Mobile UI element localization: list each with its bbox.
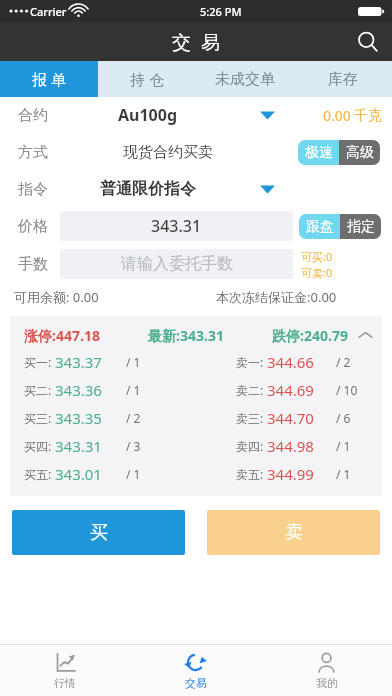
staticText: 现货合约买卖 [123,143,213,162]
staticText: Carrier [30,4,67,19]
staticText: 买五: [24,466,52,482]
button[interactable]: Search [344,22,392,61]
staticText: 可卖:0 [301,265,333,280]
staticText: 买二: [24,382,52,398]
staticText: 手数 [18,255,48,274]
staticText: / 1 [126,466,141,482]
staticText: 本次冻结保证金:0.00 [216,288,337,306]
staticText: 343.35 [55,408,102,428]
staticText: / 6 [336,410,351,426]
staticText: 343.31 [151,215,202,237]
button[interactable]: 343.31 [60,211,293,241]
button[interactable]: 库存 [294,61,392,97]
staticText: 卖二: [236,382,264,398]
staticText: 交 易 [172,29,220,55]
staticText: 343.31 [55,436,102,456]
button[interactable]: 持 仓 [98,61,196,97]
button[interactable]: 买一: [10,348,382,376]
staticText: 最新:343.31 [148,326,224,345]
staticText: 普通限价指令 [100,179,196,199]
staticText: 库存 [328,70,358,89]
button[interactable]: 买五: [10,460,382,488]
staticText: 买三: [24,410,52,426]
staticText: 持 仓 [130,69,164,89]
staticText: 343.37 [55,352,102,372]
staticText: 千克 [354,107,382,125]
staticText: / 2 [126,410,141,426]
button[interactable]: 指令 [0,171,392,207]
button[interactable]: 交易 [130,645,261,696]
staticText: 价格 [18,217,48,236]
staticText: 343.01 [55,464,102,484]
staticText: 344.66 [267,352,314,372]
button[interactable]: 买二: [10,376,382,404]
staticText: 方式 [18,143,48,162]
button[interactable]: 卖 [207,510,380,555]
staticText: 可买:0 [301,249,333,264]
staticText: 跟盘 [306,218,334,236]
staticText: 344.99 [267,464,314,484]
staticText: 买一: [24,354,52,370]
button[interactable]: 极速 [298,140,339,165]
staticText: Au100g [118,104,178,126]
staticText: 卖 [285,521,303,544]
staticText: / 1 [336,466,351,482]
staticText: 5:26 PM [200,4,242,19]
staticText: 我的 [316,676,338,690]
staticText: 合约 [18,106,48,125]
staticText: 未成交单 [215,70,275,89]
button[interactable]: 我的 [261,645,392,696]
staticText: / 10 [336,382,358,398]
staticText: 0.00 [323,106,351,125]
staticText: 交易 [185,676,207,690]
staticText: 买 [90,521,108,544]
staticText: 344.69 [267,380,314,400]
button[interactable]: 跟盘 [299,214,340,239]
button[interactable]: 买三: [10,404,382,432]
button[interactable]: 报 单 [0,61,98,97]
staticText: 请输入委托手数 [121,254,233,274]
staticText: 卖一: [236,354,264,370]
staticText: 极速 [305,144,333,162]
button[interactable]: 买 [12,510,185,555]
staticText: / 3 [126,438,141,454]
staticText: / 2 [336,354,351,370]
button[interactable]: 未成交单 [196,61,294,97]
staticText: 高级 [346,144,374,162]
staticText: 报 单 [32,69,66,89]
staticText: 买四: [24,438,52,454]
button[interactable]: 合约 [0,97,392,133]
button[interactable]: 买四: [10,432,382,460]
staticText: 344.70 [267,408,314,428]
staticText: 卖四: [236,438,264,454]
staticText: / 1 [336,438,351,454]
staticText: 指定 [347,218,375,236]
staticText: 344.98 [267,436,314,456]
button[interactable]: 指定 [340,214,381,239]
staticText: 行情 [54,676,76,690]
staticText: 可用余额: 0.00 [14,288,99,306]
button[interactable]: 请输入委托手数 [60,249,293,279]
staticText: 涨停:447.18 [24,326,100,345]
button[interactable]: 行情 [0,645,130,696]
staticText: 卖三: [236,410,264,426]
button[interactable]: Collapse [348,322,382,348]
staticText: / 1 [126,354,141,370]
staticText: 指令 [18,180,48,199]
staticText: 卖五: [236,466,264,482]
button[interactable]: 高级 [339,140,380,165]
staticText: 跌停:240.79 [272,326,348,345]
staticText: / 1 [126,382,141,398]
staticText: 343.36 [55,380,102,400]
